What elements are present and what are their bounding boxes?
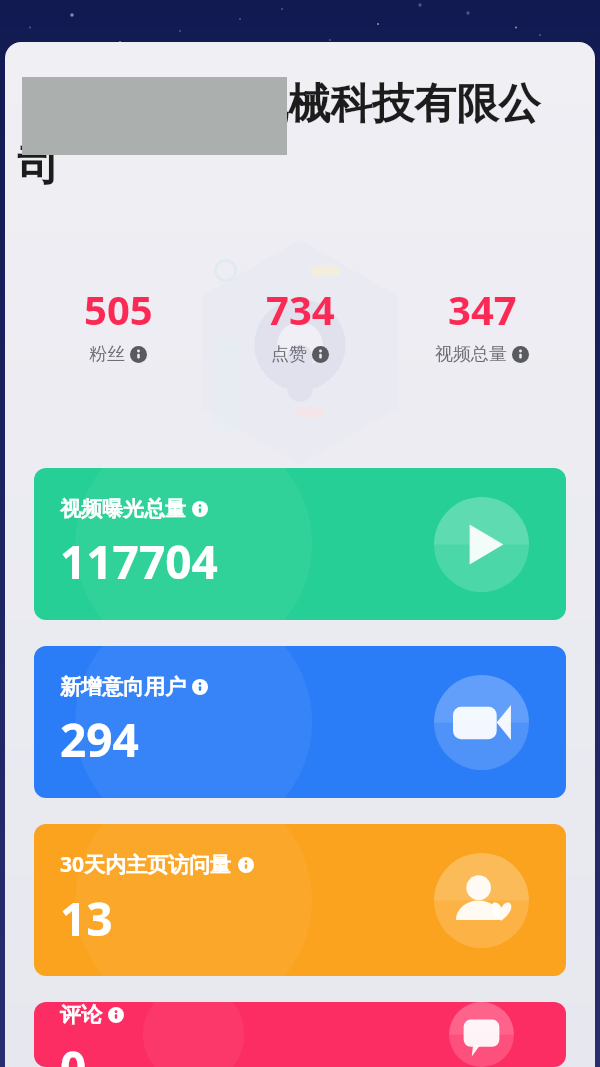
button[interactable]: 新增意向用户 (34, 646, 566, 798)
staticText: 30天内主页访问量 (60, 850, 232, 879)
button[interactable]: 视频曝光总量 (34, 468, 566, 620)
staticText: 视频曝光总量 (60, 496, 186, 522)
staticText: 新增意向用户 (60, 674, 186, 700)
button[interactable]: 评论 (434, 1002, 529, 1067)
staticText: 294 (60, 708, 139, 771)
staticText: 0 (60, 1036, 87, 1067)
button[interactable]: 505 (27, 282, 209, 366)
staticText: 粉丝 (89, 343, 125, 366)
button[interactable]: 评论 (34, 1002, 566, 1067)
button[interactable]: 新增意向用户 (434, 675, 529, 770)
staticText: 机械科技有限公司 (17, 73, 577, 193)
staticText: 点赞 (271, 343, 307, 366)
button[interactable]: 30天内主页访问量 (34, 824, 566, 976)
staticText: 评论 (60, 1002, 102, 1028)
staticText: 117704 (60, 530, 218, 593)
staticText: 734 (266, 282, 335, 336)
button[interactable]: 347 (391, 282, 573, 366)
staticText: 347 (448, 282, 517, 336)
staticText: 505 (84, 282, 153, 336)
button[interactable]: 30天内主页访问量 (434, 853, 529, 948)
button[interactable]: 视频曝光总量 (434, 497, 529, 592)
staticText: 13 (60, 887, 113, 950)
staticText: 视频总量 (435, 343, 507, 366)
button[interactable]: 734 (209, 282, 391, 366)
